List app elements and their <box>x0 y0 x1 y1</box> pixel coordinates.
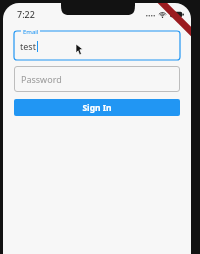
staticText: Password <box>21 73 62 85</box>
staticText: 7:22 <box>17 8 35 20</box>
button[interactable]: Email <box>14 31 180 60</box>
staticText: test <box>20 40 36 52</box>
staticText: Sign In <box>82 102 112 114</box>
staticText: Email <box>23 28 39 36</box>
button[interactable]: Sign In <box>14 99 180 116</box>
button[interactable]: Password <box>14 66 180 92</box>
